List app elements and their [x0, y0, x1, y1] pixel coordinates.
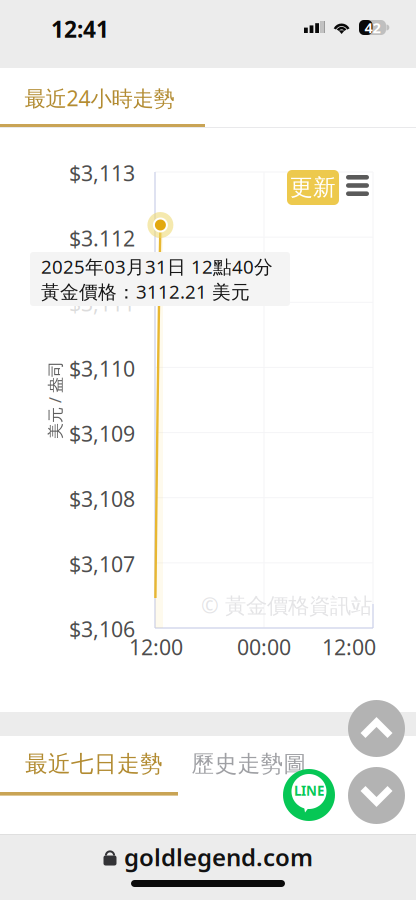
staticText: 00:00	[237, 633, 291, 661]
staticText: 美元 / 盎司	[16, 389, 94, 411]
staticText: © 黃金價格資訊站	[201, 591, 372, 619]
staticText: 42	[364, 18, 380, 37]
staticText: 歷史走勢圖	[191, 750, 306, 778]
staticText: $3,106	[69, 615, 135, 643]
staticText: $3,111	[69, 289, 135, 317]
staticText: 黃金價格：3112.21 美元	[41, 279, 250, 304]
staticText: $3,107	[69, 550, 135, 578]
button[interactable]: 最近七日走勢	[0, 736, 178, 792]
button[interactable]: goldlegend.com	[0, 842, 416, 872]
button[interactable]: Menu	[346, 175, 369, 196]
staticText: LINE	[294, 782, 324, 799]
staticText: 最近七日走勢	[25, 750, 163, 778]
button[interactable]: Share to LINE	[283, 769, 335, 821]
button[interactable]: Scroll to bottom	[348, 767, 405, 824]
button[interactable]: 更新	[287, 170, 339, 205]
staticText: $3,109	[69, 419, 135, 448]
staticText: goldlegend.com	[124, 841, 313, 873]
button[interactable]: 最近24小時走勢	[0, 68, 205, 128]
staticText: $3.112	[69, 224, 135, 252]
staticText: $3,108	[69, 484, 135, 513]
staticText: 12:00	[129, 633, 183, 661]
staticText: 12:41	[51, 14, 109, 44]
staticText: $3,110	[69, 354, 135, 383]
staticText: 2025年03月31日 12點40分	[41, 254, 273, 279]
button[interactable]: Scroll to top	[348, 700, 405, 757]
staticText: 12:00	[322, 633, 376, 661]
staticText: 最近24小時走勢	[24, 84, 174, 112]
staticText: $3,113	[69, 159, 135, 187]
button[interactable]: 歷史走勢圖	[174, 736, 324, 792]
staticText: 更新	[290, 174, 336, 201]
